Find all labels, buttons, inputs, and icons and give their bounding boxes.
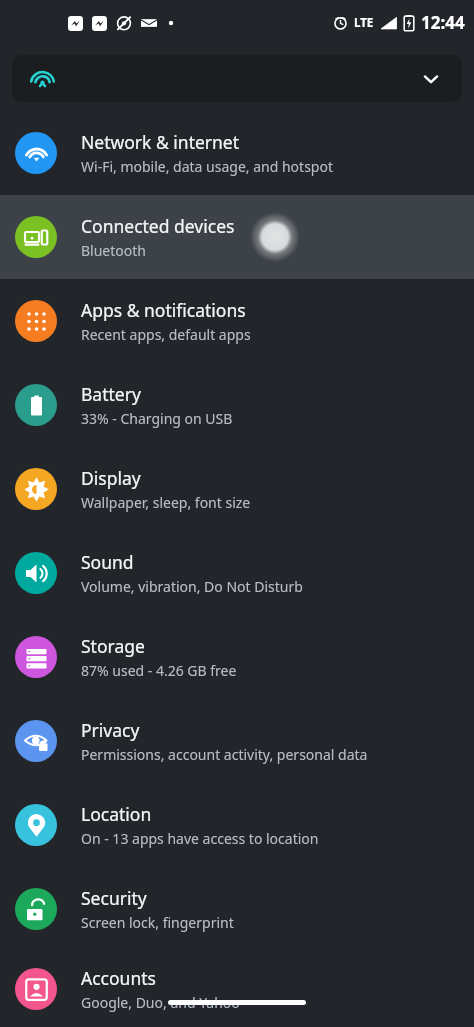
staticText: Permissions, account activity, personal … [81,745,368,764]
staticText: Sound [81,550,134,574]
staticText: Recent apps, default apps [81,325,251,344]
button[interactable]: Sound [0,531,474,615]
button[interactable]: Storage [0,615,474,699]
staticText: 33% - Charging on USB [81,409,233,428]
button[interactable]: Battery [0,363,474,447]
button[interactable]: Network & internet [0,111,474,195]
staticText: Display [81,466,141,490]
staticText: Location [81,802,152,826]
staticText: Wi-Fi, mobile, data usage, and hotspot [81,157,333,176]
staticText: Privacy [81,718,140,742]
staticText: Wallpaper, sleep, font size [81,493,251,512]
staticText: Google, Duo, and Yahoo [81,993,240,1012]
staticText: Storage [81,634,145,658]
staticText: Apps & notifications [81,298,246,322]
staticText: Security [81,886,147,910]
button[interactable]: Privacy [0,699,474,783]
other: Nearby share [30,66,55,91]
button[interactable]: Location [0,783,474,867]
staticText: Screen lock, fingerprint [81,913,234,932]
staticText: Accounts [81,966,156,990]
staticText: Network & internet [81,130,240,154]
staticText: 12:44 [421,11,465,34]
button[interactable]: Apps & notifications [0,279,474,363]
button[interactable]: Security [0,867,474,951]
staticText: 87% used - 4.26 GB free [81,661,237,680]
staticText: On - 13 apps have access to location [81,829,319,848]
button[interactable]: Connected devices [0,195,474,279]
other: Expand [422,70,440,88]
button[interactable]: Nearby share [12,55,462,102]
staticText: Connected devices [81,214,235,238]
staticText: Bluetooth [81,241,146,260]
button[interactable]: Display [0,447,474,531]
staticText: Volume, vibration, Do Not Disturb [81,577,303,596]
staticText: Battery [81,382,141,406]
button[interactable]: Accounts [0,951,474,1027]
staticText: LTE [354,15,374,30]
